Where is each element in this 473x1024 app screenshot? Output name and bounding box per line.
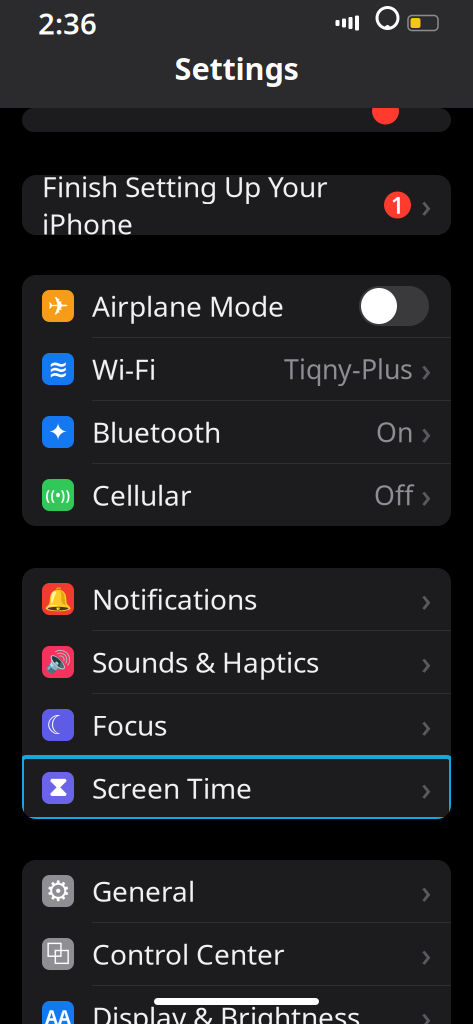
button[interactable]: 🔔 (22, 568, 451, 630)
staticText: ⚙ (45, 875, 70, 907)
staticText: › (421, 474, 431, 516)
staticText: Bluetooth (92, 413, 221, 451)
staticText: Wi-Fi (92, 350, 156, 388)
staticText: › (421, 641, 431, 683)
staticText: Off (374, 477, 413, 513)
staticText: Focus (92, 706, 167, 744)
button[interactable]: ⧗ (22, 757, 451, 819)
staticText: Display & Brightness (92, 998, 360, 1024)
staticText: › (421, 870, 431, 912)
staticText: Tiqny-Plus (284, 351, 413, 387)
staticText: 1 (391, 190, 404, 220)
staticText: Finish Setting Up Your iPhone (42, 168, 328, 242)
button[interactable]: ((•)) (22, 464, 451, 526)
button[interactable]: AA (22, 986, 451, 1024)
staticText: Notifications (92, 580, 257, 618)
staticText: Cellular (92, 476, 192, 514)
staticText: Settings (174, 48, 298, 88)
staticText: Control Center (92, 935, 285, 973)
button[interactable]: ≋ (22, 338, 451, 400)
staticText: 🔊 (44, 650, 71, 674)
staticText: › (421, 704, 431, 746)
button[interactable]: ⚙ (22, 860, 451, 922)
button[interactable]: Finish Setting Up Your iPhone (22, 175, 451, 235)
staticText: › (421, 348, 431, 390)
staticText: ((•)) (45, 486, 70, 504)
staticText: On (376, 414, 413, 450)
staticText: Sounds & Haptics (92, 643, 319, 681)
staticText: General (92, 872, 195, 910)
staticText: AA (45, 1005, 71, 1024)
button[interactable]: 🔊 (22, 631, 451, 693)
staticText: ≋ (48, 355, 68, 383)
staticText: ⧉ (45, 940, 70, 968)
button[interactable]: ⧉ (22, 923, 451, 985)
staticText: ☾ (46, 710, 70, 740)
staticText: › (421, 411, 431, 453)
staticText: ✦ (48, 418, 68, 446)
staticText: › (421, 578, 431, 620)
staticText: ✈ (47, 292, 68, 320)
button[interactable]: ☾ (22, 694, 451, 756)
button[interactable]: Airplane Mode (359, 286, 429, 326)
staticText: ⧗ (48, 775, 67, 801)
staticText: 🔔 (44, 586, 72, 612)
button[interactable]: ✦ (22, 401, 451, 463)
staticText: › (421, 996, 431, 1024)
staticText: Screen Time (92, 769, 252, 807)
staticText: › (421, 184, 431, 226)
staticText: 2:36 (38, 3, 97, 42)
staticText: › (421, 933, 431, 975)
staticText: › (421, 767, 431, 809)
staticText: Airplane Mode (92, 287, 284, 325)
